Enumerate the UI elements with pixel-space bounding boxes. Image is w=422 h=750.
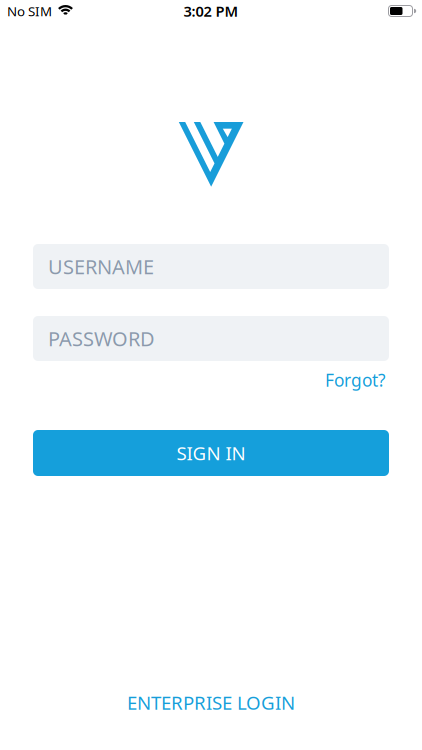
button[interactable]: ENTERPRISE LOGIN (127, 690, 295, 715)
staticText: ENTERPRISE LOGIN (127, 690, 295, 715)
staticText: Forgot? (325, 368, 386, 391)
staticText: SIGN IN (176, 441, 245, 465)
staticText: USERNAME (48, 253, 154, 280)
button[interactable]: Forgot? (325, 368, 386, 391)
staticText: PASSWORD (48, 325, 155, 352)
button[interactable]: USERNAME (33, 244, 389, 289)
staticText: 3:02 PM (183, 1, 238, 21)
button[interactable]: SIGN IN (33, 430, 389, 476)
staticText: No SIM (7, 2, 52, 20)
button[interactable]: PASSWORD (33, 316, 389, 361)
